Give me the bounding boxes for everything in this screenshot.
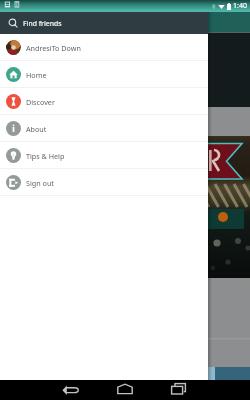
button[interactable]: Back <box>53 380 89 400</box>
staticText: Sign out <box>26 178 54 188</box>
button[interactable]: Discover <box>0 88 208 115</box>
staticText: About <box>26 124 47 134</box>
staticText: AndresiTo Down <box>26 43 81 53</box>
staticText: Tips & Help <box>26 151 65 161</box>
staticText: Discover <box>26 97 55 107</box>
button[interactable]: AndresiTo Down <box>0 34 208 61</box>
button[interactable]: Home <box>107 380 143 400</box>
button[interactable]: Tips & Help <box>0 142 208 169</box>
button[interactable]: Find friends <box>0 12 208 34</box>
staticText: 1:40 <box>233 1 247 11</box>
button[interactable]: Recent apps <box>160 380 196 400</box>
staticText: Home <box>26 70 47 80</box>
button[interactable]: About <box>0 115 208 142</box>
button[interactable]: Home <box>0 61 208 88</box>
staticText: Find friends <box>23 19 62 28</box>
button[interactable]: Sign out <box>0 169 208 196</box>
